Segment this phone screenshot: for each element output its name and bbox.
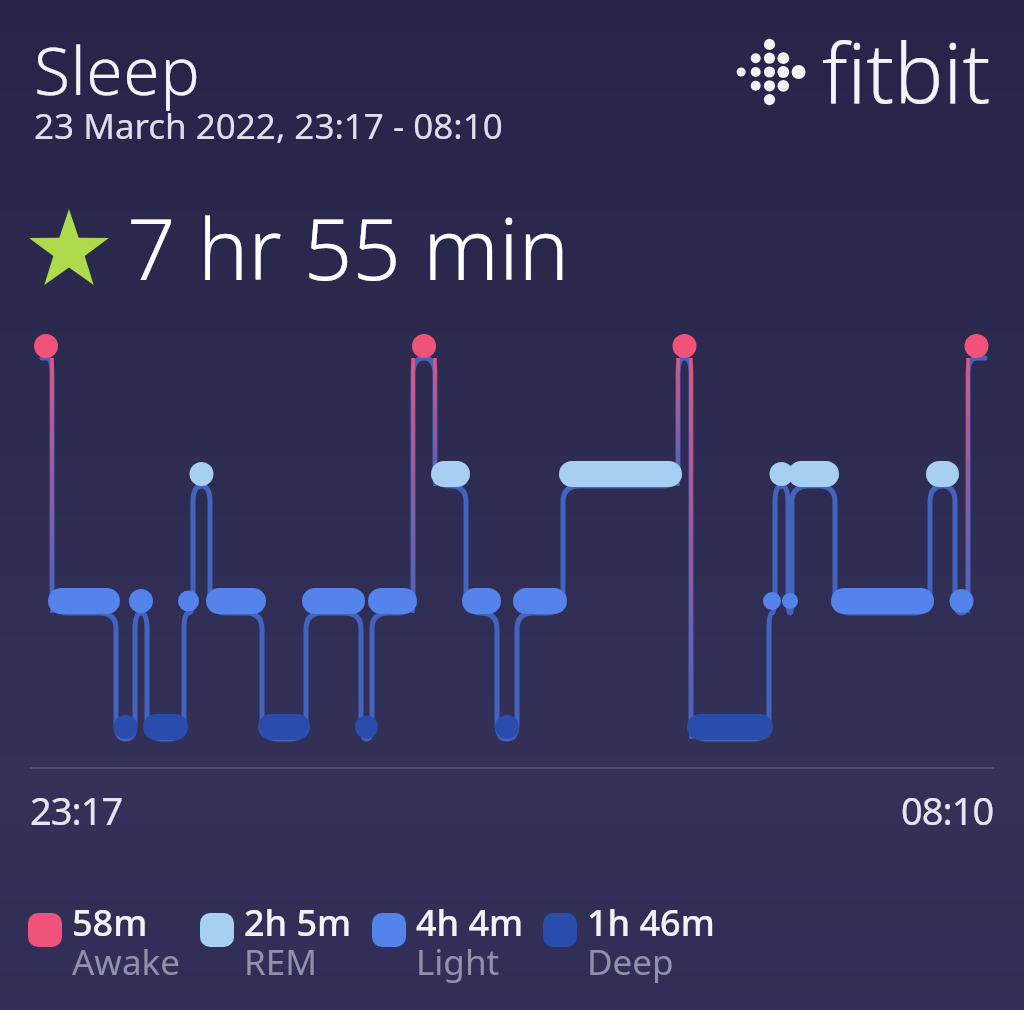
staticText: 23 March 2022, 23:17 - 08:10 [34,102,503,150]
staticText: 23:17 [30,784,123,836]
staticText: Sleep [34,24,201,114]
staticText: 4h 4m [416,898,524,947]
staticText: Light [416,938,500,986]
staticText: fitbit [822,15,991,127]
staticText: REM [244,938,317,986]
staticText: 7 hr 55 min [127,189,570,305]
staticText: 1h 46m [587,898,715,947]
staticText: Deep [587,938,674,986]
staticText: Awake [72,938,180,986]
staticText: 58m [72,898,148,947]
staticText: 08:10 [901,784,994,836]
staticText: 2h 5m [244,898,352,947]
